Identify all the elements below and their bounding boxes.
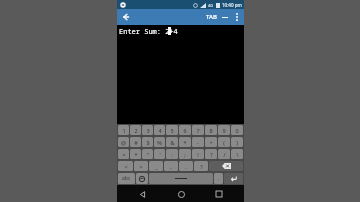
staticText: / [223,151,226,158]
staticText: ( [223,139,225,146]
button[interactable]: $ [142,137,153,147]
button[interactable]: + [205,137,217,147]
staticText: ! [197,151,199,158]
staticText: 8 [209,127,213,134]
button[interactable]: / [218,149,230,159]
staticText: 6 [183,127,187,134]
staticText: ) [236,139,238,146]
staticText: " [146,151,149,158]
staticText: , [170,163,172,170]
staticText: Enter Sum: 2+4 [119,27,178,37]
staticText: # [134,139,138,146]
button[interactable]: _ [149,161,163,171]
button[interactable]: 3 [142,125,153,135]
button[interactable]: & [166,137,178,147]
button[interactable]: ) [231,137,243,147]
button[interactable]: - [192,137,204,147]
staticText: 10:40 pm [222,2,242,8]
button[interactable]: . [179,161,193,171]
button[interactable]: ! [192,149,204,159]
button[interactable]: More options [231,11,243,23]
staticText: 1 [122,127,126,134]
button[interactable]: " [142,149,153,159]
staticText: * [183,139,187,146]
staticText: abc [122,175,131,182]
staticText: > [139,163,143,170]
staticText: \ [236,151,239,158]
button[interactable]: 2 [130,125,141,135]
button[interactable]: # [130,137,141,147]
staticText: % [157,139,162,146]
button[interactable]: , [164,161,178,171]
staticText: & [170,139,175,146]
button[interactable]: % [154,137,165,147]
button[interactable]: ' [154,149,165,159]
staticText: ; [184,151,186,158]
button[interactable]: Emoji [136,173,148,184]
staticText: _ [155,163,158,170]
button[interactable]: 0 [231,125,243,135]
staticText: : [171,151,173,158]
button[interactable]: Back [135,187,149,201]
staticText: . [218,175,220,182]
button[interactable]: 1 [118,125,129,135]
button[interactable]: Space [149,173,213,184]
staticText: . [185,163,187,170]
button[interactable]: 4 [154,125,165,135]
staticText: * [134,151,138,158]
button[interactable]: TAB [204,13,219,21]
staticText: 9 [222,127,226,134]
button[interactable]: : [166,149,178,159]
button[interactable]: * [179,137,191,147]
button[interactable]: . [214,173,223,184]
button[interactable]: 9 [218,125,230,135]
staticText: 0 [235,127,239,134]
staticText: TAB [206,13,217,21]
button[interactable]: Recents [212,187,226,201]
button[interactable]: * [130,149,141,159]
button[interactable]: @ [118,137,129,147]
staticText: + [209,139,213,146]
button[interactable]: 6 [179,125,191,135]
staticText: $ [146,139,150,146]
button[interactable]: ; [179,149,191,159]
staticText: ? [210,151,213,158]
button[interactable]: Back [119,10,133,24]
button[interactable]: Minimize [219,11,231,23]
button[interactable]: ? [205,149,217,159]
button[interactable]: Home [174,187,188,201]
staticText: = [122,151,126,158]
staticText: 2 [134,127,138,134]
staticText: 7 [196,127,200,134]
button[interactable]: 5 [166,125,178,135]
staticText: 4 [158,127,162,134]
button[interactable]: ? [194,161,208,171]
staticText: 5 [170,127,174,134]
button[interactable]: = [118,149,129,159]
staticText: ' [159,151,161,158]
button[interactable]: Enter [224,173,243,184]
staticText: 3 [146,127,150,134]
button[interactable]: abc [118,173,135,184]
button[interactable]: Backspace [209,161,243,171]
button[interactable]: 8 [205,125,217,135]
staticText: ? [200,163,203,170]
staticText: - [197,139,199,146]
staticText: 4G [208,3,214,8]
staticText: < [124,163,128,170]
button[interactable]: > [134,161,148,171]
button[interactable]: < [118,161,133,171]
staticText: @ [121,139,126,146]
button[interactable]: \ [231,149,243,159]
button[interactable]: 7 [192,125,204,135]
button[interactable]: ( [218,137,230,147]
